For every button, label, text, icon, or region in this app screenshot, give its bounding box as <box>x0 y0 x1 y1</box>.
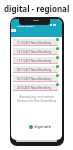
staticText: Meine Vorteile <box>17 24 34 27</box>
staticText: digital - regional <box>4 3 70 14</box>
button[interactable]: 02.11.2021 Neue Bestellung <box>13 75 58 82</box>
button[interactable]: 08.11.2021 Neue Bestellung <box>13 66 58 73</box>
staticText: 14.12.2021 Neue Bestellung <box>17 50 52 54</box>
staticText: 08.11.2021 Neue Bestellung <box>17 68 52 72</box>
staticText: Ausstattung und weitere Services für Ihr… <box>16 95 57 103</box>
staticText: 15.12.2021 Neue Bestellung <box>17 41 52 45</box>
staticText: 17.11.2021 Neue Bestellung <box>17 59 52 63</box>
button[interactable]: Search <box>11 29 16 32</box>
button[interactable]: 14.12.2021 Neue Bestellung <box>13 48 58 55</box>
staticText: digimath <box>34 124 52 129</box>
staticText: 28.10.2021 Neue Bestellung <box>17 86 52 90</box>
staticText: 02.11.2021 Neue Bestellung <box>17 77 52 81</box>
button[interactable]: 17.11.2021 Neue Bestellung <box>13 57 58 64</box>
button[interactable]: 15.12.2021 Neue Bestellung <box>13 39 58 46</box>
button[interactable]: 28.10.2021 Neue Bestellung <box>13 84 58 91</box>
